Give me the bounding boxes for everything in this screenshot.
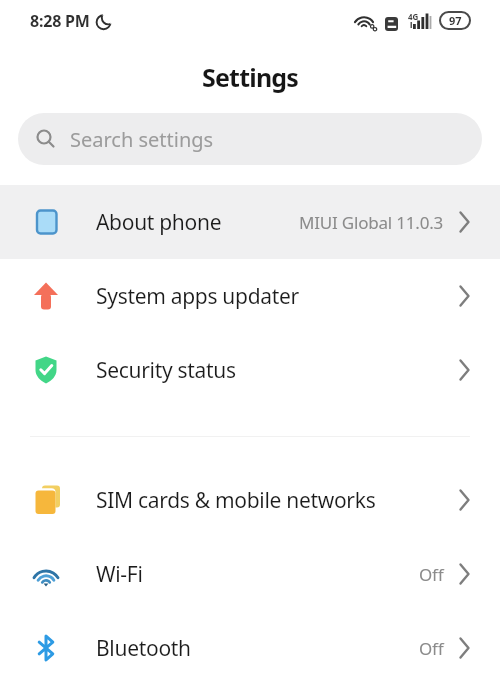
staticText: 4G <box>408 11 419 22</box>
staticText: 8:28 PM <box>30 10 90 32</box>
staticText: Settings <box>202 60 299 94</box>
button[interactable]: Search settings <box>18 113 482 165</box>
button[interactable]: SIM cards & mobile networks <box>0 463 500 537</box>
staticText: Search settings <box>70 126 214 153</box>
staticText: About phone <box>96 208 222 237</box>
button[interactable]: System apps updater <box>0 259 500 333</box>
staticText: Off <box>419 563 444 586</box>
staticText: SIM cards & mobile networks <box>96 486 376 515</box>
button[interactable]: Security status <box>0 333 500 407</box>
staticText: Off <box>419 637 444 660</box>
button[interactable]: Wi-Fi <box>0 537 500 611</box>
staticText: Bluetooth <box>96 634 191 663</box>
staticText: Security status <box>96 356 236 385</box>
button[interactable]: About phone <box>0 185 500 259</box>
staticText: 97 <box>449 13 462 28</box>
button[interactable]: Bluetooth <box>0 611 500 685</box>
staticText: Wi-Fi <box>96 560 143 589</box>
staticText: MIUI Global 11.0.3 <box>299 211 444 234</box>
staticText: System apps updater <box>96 282 299 311</box>
